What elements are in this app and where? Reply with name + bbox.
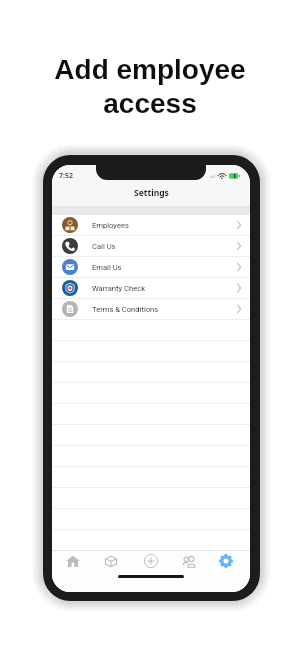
button[interactable]: Warranty Check: [52, 278, 250, 298]
staticText: Warranty Check: [92, 284, 146, 293]
staticText: Terms & Conditions: [92, 305, 159, 314]
button[interactable]: Employees: [52, 215, 250, 235]
staticText: Call Us: [92, 242, 116, 251]
button[interactable]: Email Us: [52, 257, 250, 277]
button[interactable]: Terms & Conditions: [52, 299, 250, 319]
staticText: Add employee access: [54, 54, 246, 119]
staticText: Settings: [134, 187, 169, 199]
button[interactable]: Settings: [212, 551, 240, 571]
staticText: Email Us: [92, 263, 122, 272]
button[interactable]: Home: [59, 551, 87, 571]
button[interactable]: Call Us: [52, 236, 250, 256]
button[interactable]: Products: [97, 551, 125, 571]
staticText: 7:52: [59, 171, 73, 181]
staticText: Employees: [92, 221, 129, 230]
button[interactable]: Add: [137, 551, 165, 571]
button[interactable]: Team: [175, 551, 203, 571]
